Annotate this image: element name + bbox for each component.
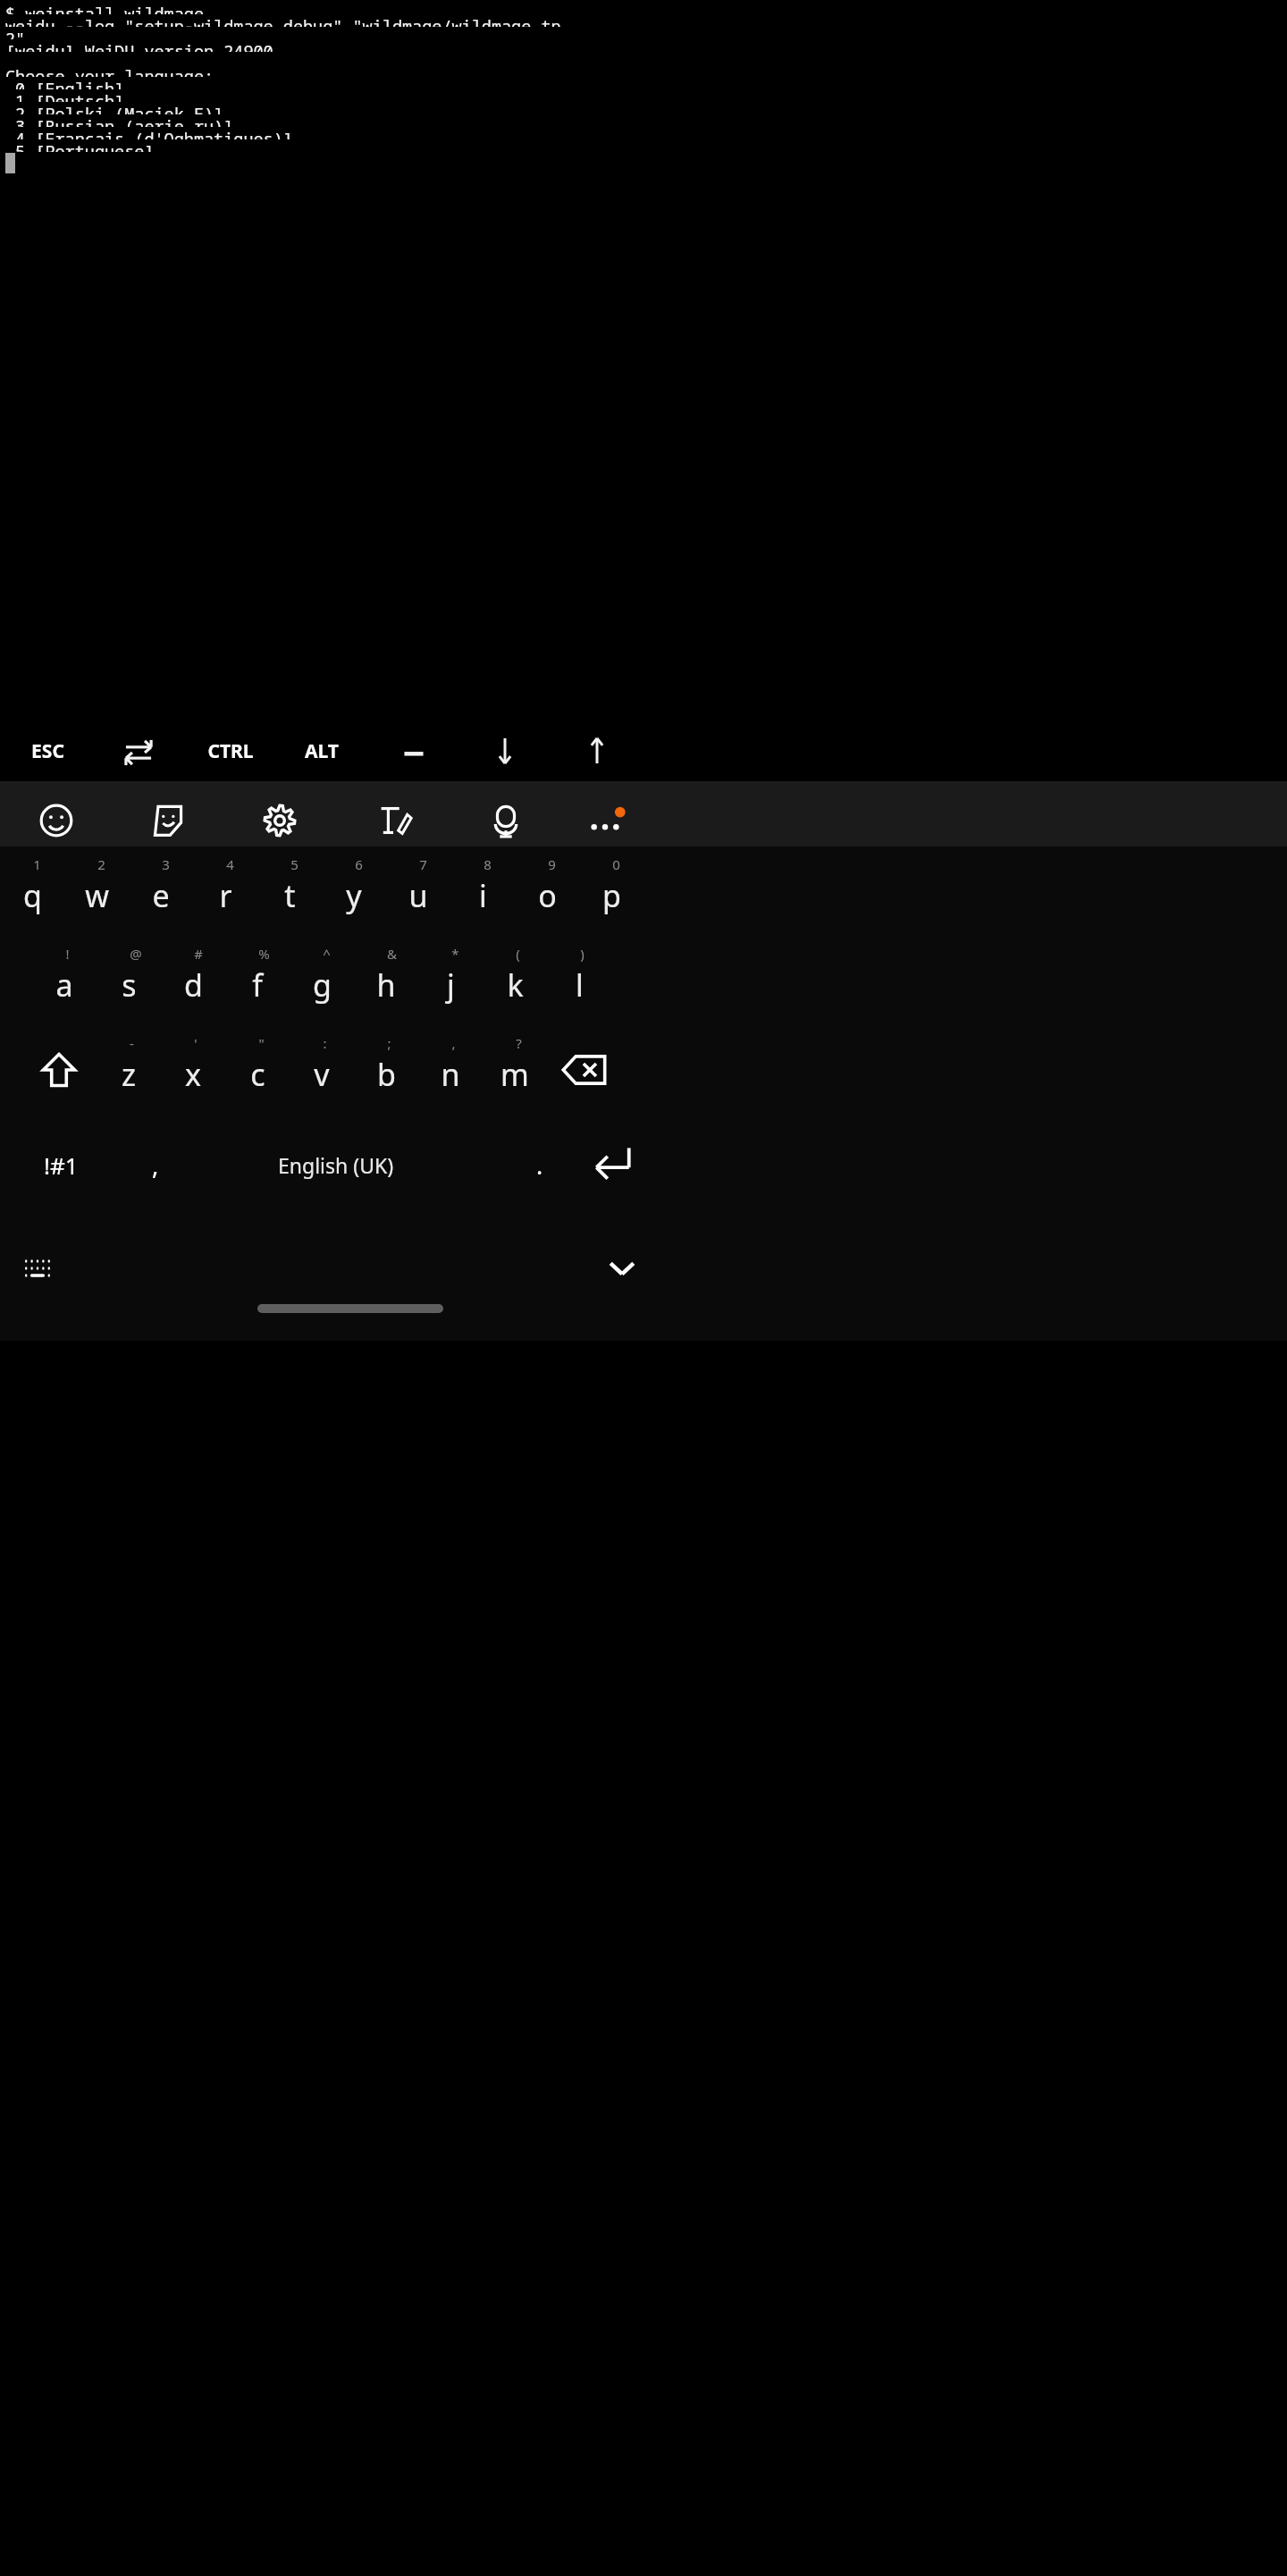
staticText: ,: [152, 1149, 159, 1182]
button[interactable]: Emoji: [31, 796, 81, 846]
staticText: Choose your language:: [5, 64, 214, 77]
staticText: z: [122, 1054, 136, 1095]
staticText: n: [441, 1054, 460, 1095]
staticText: p: [602, 875, 621, 916]
button[interactable]: ;: [354, 1025, 418, 1115]
button[interactable]: %: [225, 936, 290, 1025]
staticText: ALT: [305, 738, 339, 764]
staticText: 3: [162, 855, 170, 873]
button[interactable]: Stickers: [143, 796, 193, 846]
staticText: :: [323, 1034, 327, 1052]
staticText: s: [122, 964, 137, 1006]
button[interactable]: Tab: [119, 733, 158, 772]
button[interactable]: ALT: [282, 726, 362, 776]
staticText: 5: [290, 855, 299, 873]
staticText: 5 [Portuguese]: [5, 139, 155, 152]
staticText: [weidu] WeiDU version 24900: [5, 39, 273, 52]
staticText: ': [194, 1034, 198, 1052]
button[interactable]: Shift: [18, 1031, 100, 1109]
staticText: 2 [Polski (Maciek F)]: [5, 102, 224, 114]
staticText: v: [314, 1054, 330, 1095]
staticText: a: [55, 964, 73, 1006]
button[interactable]: ": [225, 1025, 290, 1115]
staticText: 0 [English]: [5, 77, 125, 89]
button[interactable]: Voice input: [481, 796, 531, 846]
staticText: ;: [387, 1034, 391, 1052]
button[interactable]: &: [354, 936, 418, 1025]
button[interactable]: Arrow up: [577, 731, 617, 770]
staticText: c: [250, 1054, 265, 1095]
button[interactable]: 2: [64, 846, 129, 936]
staticText: o: [538, 875, 557, 916]
button[interactable]: $ weinstall wildmage: [0, 0, 1287, 720]
button[interactable]: *: [418, 936, 483, 1025]
button[interactable]: ,: [125, 1124, 186, 1206]
button[interactable]: English (UK): [193, 1124, 479, 1206]
button[interactable]: 3: [129, 846, 193, 936]
staticText: 9: [548, 855, 556, 873]
button[interactable]: ESC: [7, 726, 88, 776]
staticText: *: [451, 945, 459, 963]
staticText: ESC: [31, 738, 64, 764]
staticText: ,: [451, 1034, 456, 1052]
button[interactable]: ,: [418, 1025, 483, 1115]
button[interactable]: ): [547, 936, 611, 1025]
button[interactable]: !#1: [16, 1124, 105, 1206]
staticText: f: [252, 964, 263, 1006]
button[interactable]: ^: [290, 936, 354, 1025]
button[interactable]: 4: [193, 846, 257, 936]
button[interactable]: -: [97, 1025, 161, 1115]
button[interactable]: Backspace: [543, 1031, 626, 1109]
staticText: t: [284, 875, 296, 916]
button[interactable]: #: [161, 936, 225, 1025]
staticText: English (UK): [278, 1151, 394, 1179]
staticText: j: [447, 964, 455, 1006]
button[interactable]: Hide keyboard: [590, 1240, 654, 1297]
button[interactable]: :: [290, 1025, 354, 1115]
staticText: 0: [612, 855, 620, 873]
staticText: w: [85, 875, 109, 916]
button[interactable]: CTRL: [190, 726, 271, 776]
button[interactable]: ?: [483, 1025, 547, 1115]
button[interactable]: 7: [386, 846, 450, 936]
staticText: &: [387, 945, 397, 963]
staticText: !: [65, 945, 70, 963]
staticText: u: [408, 875, 428, 916]
button[interactable]: Text editing: [368, 796, 418, 846]
staticText: h: [376, 964, 396, 1006]
staticText: @: [130, 945, 142, 963]
button[interactable]: More options: [580, 799, 630, 849]
staticText: #: [194, 945, 203, 963]
staticText: x: [185, 1054, 201, 1095]
staticText: k: [507, 964, 524, 1006]
button[interactable]: !: [32, 936, 97, 1025]
button[interactable]: 9: [515, 846, 579, 936]
button[interactable]: 5: [257, 846, 322, 936]
staticText: 4: [226, 855, 234, 873]
staticText: (: [516, 945, 520, 963]
button[interactable]: Switch keyboard: [5, 1240, 70, 1297]
staticText: l: [576, 964, 584, 1006]
button[interactable]: Settings: [255, 796, 305, 846]
staticText: 8: [484, 855, 492, 873]
button[interactable]: .: [509, 1124, 570, 1206]
button[interactable]: @: [97, 936, 161, 1025]
staticText: m: [500, 1054, 529, 1095]
button[interactable]: 0: [579, 846, 643, 936]
staticText: b: [377, 1054, 396, 1095]
button[interactable]: Minus: [394, 733, 433, 772]
button[interactable]: (: [483, 936, 547, 1025]
staticText: %: [258, 945, 270, 963]
staticText: !#1: [44, 1149, 79, 1181]
staticText: ): [580, 945, 585, 963]
staticText: 3 [Russian (aerie.ru)]: [5, 114, 234, 127]
button[interactable]: Enter: [572, 1122, 652, 1204]
button[interactable]: 1: [0, 846, 64, 936]
button[interactable]: ': [161, 1025, 225, 1115]
staticText: 2: [97, 855, 105, 873]
staticText: -: [130, 1034, 134, 1052]
staticText: g: [313, 964, 332, 1006]
button[interactable]: 6: [322, 846, 386, 936]
button[interactable]: Arrow down: [485, 731, 525, 770]
button[interactable]: 8: [450, 846, 515, 936]
